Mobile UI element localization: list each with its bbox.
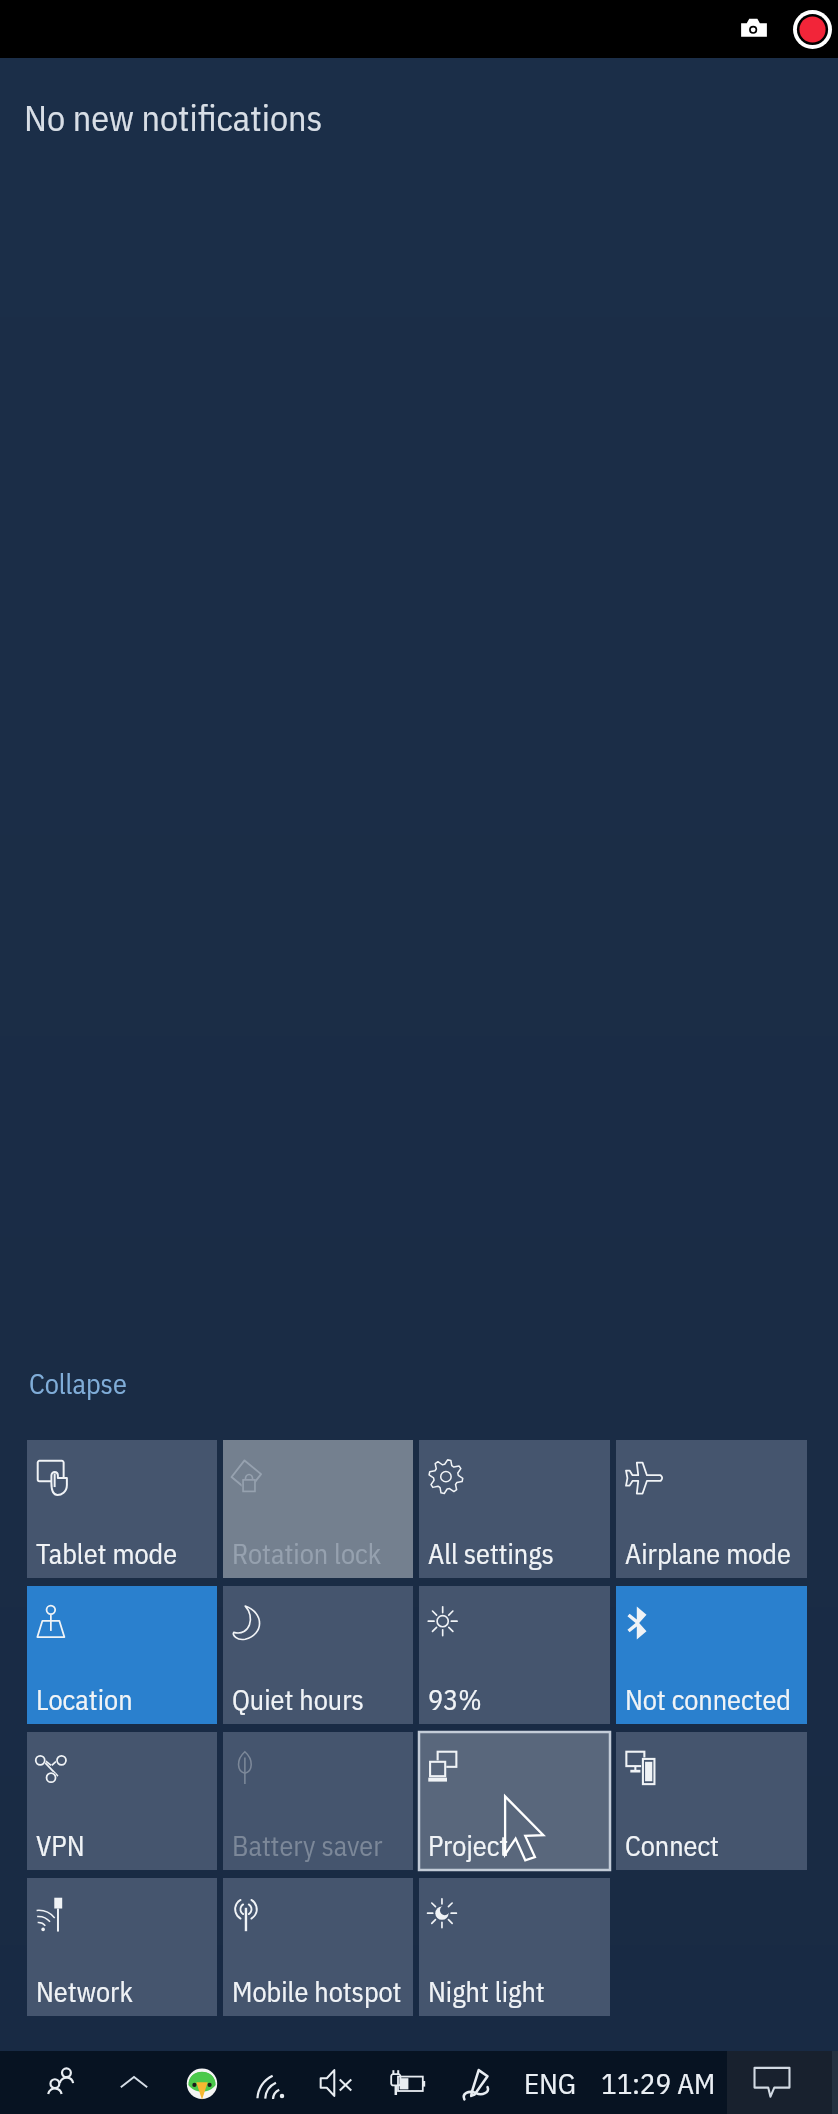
button[interactable]: Pen bbox=[454, 2051, 502, 2114]
staticText: Night light bbox=[428, 1973, 545, 2009]
button[interactable]: Battery bbox=[384, 2051, 432, 2114]
staticText: Collapse bbox=[29, 1365, 127, 1401]
button[interactable]: Battery saver bbox=[223, 1732, 413, 1870]
button[interactable]: Show hidden icons bbox=[110, 2051, 158, 2114]
staticText: Quiet hours bbox=[232, 1681, 364, 1717]
button[interactable]: Action Center bbox=[727, 2051, 832, 2114]
button[interactable]: Quiet hours bbox=[223, 1586, 413, 1724]
button[interactable]: Tablet mode bbox=[27, 1440, 217, 1578]
staticText: Tablet mode bbox=[36, 1535, 178, 1571]
staticText: ENG bbox=[524, 2064, 576, 2102]
button[interactable]: Volume bbox=[313, 2051, 361, 2114]
button[interactable]: Connect bbox=[616, 1732, 807, 1870]
button[interactable]: 93% bbox=[419, 1586, 610, 1724]
staticText: VPN bbox=[36, 1827, 85, 1863]
button[interactable]: Mobile hotspot bbox=[223, 1878, 413, 2016]
button[interactable]: App bbox=[178, 2051, 226, 2114]
button[interactable]: Not connected bbox=[616, 1586, 807, 1724]
staticText: Battery saver bbox=[232, 1827, 383, 1863]
staticText: Project bbox=[428, 1827, 509, 1863]
staticText: Airplane mode bbox=[625, 1535, 791, 1571]
staticText: Not connected bbox=[625, 1681, 791, 1717]
button[interactable]: Collapse bbox=[22, 1361, 134, 1405]
staticText: Mobile hotspot bbox=[232, 1973, 402, 2009]
button[interactable]: Network bbox=[249, 2051, 297, 2114]
button[interactable]: Airplane mode bbox=[616, 1440, 807, 1578]
button[interactable]: Network bbox=[27, 1878, 217, 2016]
button[interactable]: Project bbox=[419, 1732, 610, 1870]
staticText: Location bbox=[36, 1681, 133, 1717]
staticText: All settings bbox=[428, 1535, 554, 1571]
staticText: Network bbox=[36, 1973, 133, 2009]
button[interactable]: Location bbox=[27, 1586, 217, 1724]
button[interactable]: Record bbox=[788, 5, 836, 53]
staticText: Rotation lock bbox=[232, 1535, 382, 1571]
staticText: 11:29 AM bbox=[601, 2064, 716, 2102]
button[interactable]: Screenshot bbox=[730, 5, 778, 53]
button[interactable]: VPN bbox=[27, 1732, 217, 1870]
staticText: Connect bbox=[625, 1827, 720, 1863]
button[interactable]: Night light bbox=[419, 1878, 610, 2016]
button[interactable]: People bbox=[37, 2051, 85, 2114]
button[interactable]: Rotation lock bbox=[223, 1440, 413, 1578]
staticText: No new notifications bbox=[24, 94, 323, 141]
button[interactable]: All settings bbox=[419, 1440, 610, 1578]
staticText: 93% bbox=[428, 1681, 482, 1717]
